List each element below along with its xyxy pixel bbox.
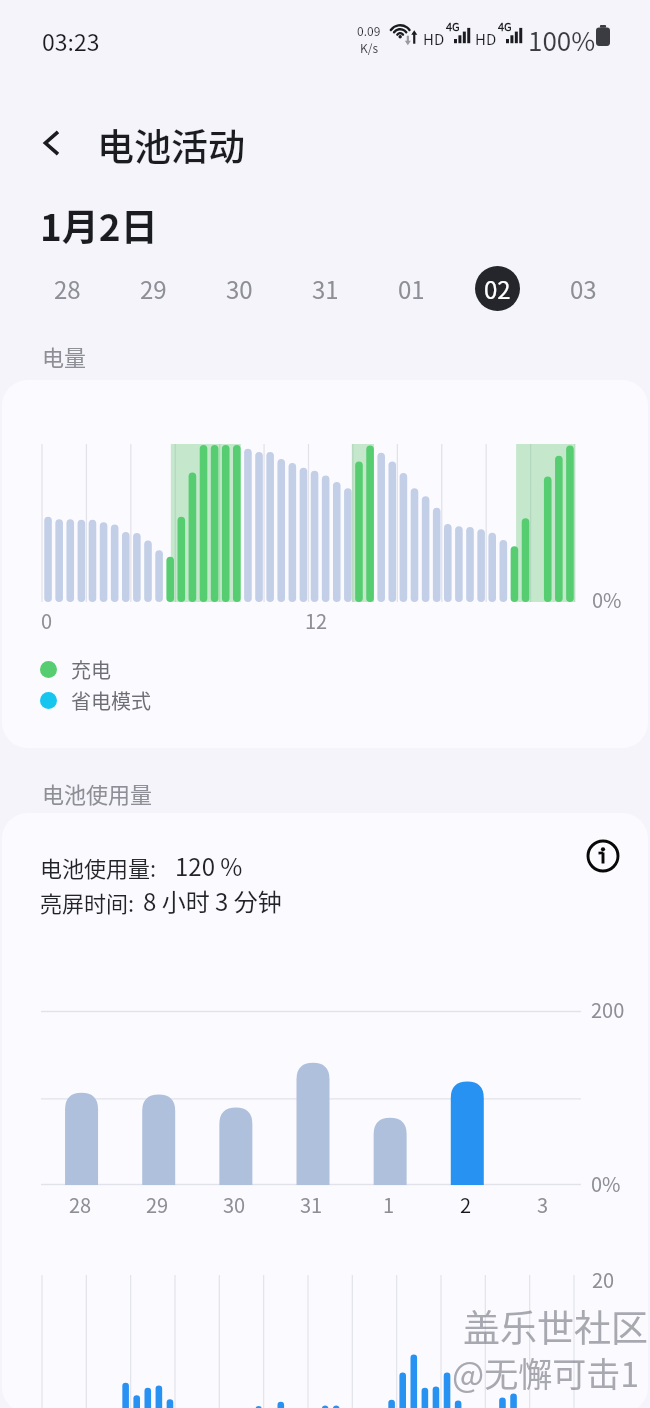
staticText: 28 — [54, 271, 81, 306]
staticText: 0% — [592, 585, 622, 614]
staticText: 8 小时 3 分钟 — [143, 883, 282, 918]
staticText: K/s — [360, 39, 379, 56]
staticText: 2 — [460, 1190, 472, 1219]
staticText: 电池使用量: — [40, 851, 157, 883]
staticText: 29 — [140, 271, 167, 306]
staticText: 31 — [300, 1190, 323, 1219]
button[interactable]: 02 — [454, 258, 540, 318]
button[interactable]: 03 — [540, 258, 626, 318]
button[interactable]: Back — [28, 119, 76, 167]
staticText: 29 — [146, 1190, 169, 1219]
staticText: 4G — [498, 18, 512, 34]
staticText: 盖乐世社区 — [463, 1299, 648, 1353]
staticText: 120 % — [175, 848, 243, 883]
staticText: 1 — [383, 1190, 395, 1219]
staticText: @无懈可击1 — [452, 1348, 640, 1397]
staticText: 200 — [591, 995, 625, 1024]
staticText: 4G — [446, 18, 460, 34]
staticText: 100% — [528, 21, 596, 59]
staticText: 亮屏时间: — [40, 886, 135, 918]
staticText: 3 — [537, 1190, 549, 1219]
staticText: 03 — [570, 271, 597, 306]
staticText: 30 — [226, 271, 253, 306]
staticText: 02 — [484, 271, 511, 306]
button[interactable]: 28 — [24, 258, 110, 318]
staticText: 电池活动 — [97, 118, 245, 172]
button[interactable]: Info — [585, 838, 621, 874]
button[interactable]: 01 — [368, 258, 454, 318]
staticText: 0.09 — [357, 22, 381, 39]
button[interactable]: 30 — [196, 258, 282, 318]
staticText: 20 — [592, 1265, 615, 1294]
staticText: 充电 — [71, 655, 111, 684]
staticText: HD — [423, 28, 445, 50]
staticText: 0 — [41, 606, 53, 635]
staticText: 电池使用量 — [42, 777, 153, 809]
staticText: 0% — [591, 1169, 621, 1198]
staticText: 03:23 — [42, 24, 100, 57]
staticText: 28 — [69, 1190, 92, 1219]
staticText: HD — [475, 28, 497, 50]
staticText: 电量 — [42, 340, 87, 372]
staticText: 12 — [305, 606, 328, 635]
staticText: 01 — [398, 271, 425, 306]
staticText: 30 — [223, 1190, 246, 1219]
staticText: 省电模式 — [71, 686, 151, 715]
staticText: 31 — [312, 271, 339, 306]
staticText: 1月2日 — [40, 198, 158, 252]
button[interactable]: 31 — [282, 258, 368, 318]
button[interactable]: 29 — [110, 258, 196, 318]
button[interactable]: 0 — [2, 380, 648, 748]
